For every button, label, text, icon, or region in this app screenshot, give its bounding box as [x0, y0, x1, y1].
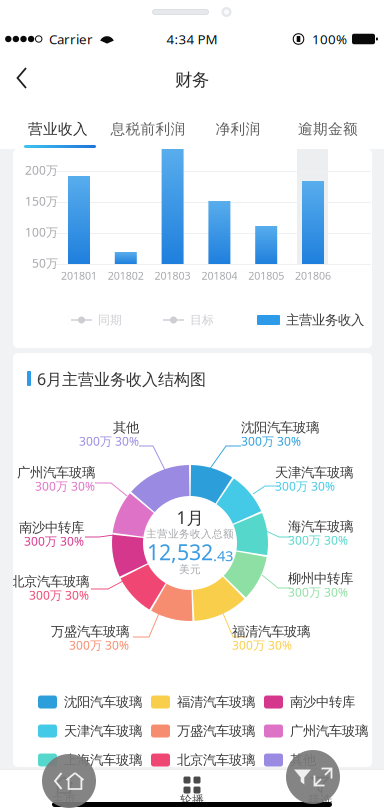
- button[interactable]: 息税前利润: [103, 102, 193, 149]
- button[interactable]: 轮播: [128, 776, 256, 806]
- staticText: 上海汽车玻璃: [64, 752, 142, 768]
- staticText: Carrier: [49, 30, 93, 48]
- staticText: 300万 30%: [69, 637, 129, 653]
- staticText: 南沙中转库: [290, 694, 355, 710]
- staticText: 300万 30%: [232, 637, 292, 653]
- staticText: 轮播: [180, 792, 204, 807]
- staticText: 300万 30%: [241, 433, 301, 449]
- staticText: 天津汽车玻璃: [64, 723, 142, 739]
- staticText: 营业收入: [28, 120, 88, 138]
- staticText: 201802: [108, 268, 144, 283]
- staticText: 201805: [248, 268, 284, 283]
- staticText: 福清汽车玻璃: [232, 623, 310, 640]
- staticText: 300万 30%: [29, 587, 89, 603]
- staticText: 目标: [190, 312, 214, 327]
- staticText: 300万 30%: [35, 478, 95, 494]
- staticText: 北京汽车玻璃: [11, 573, 89, 590]
- staticText: 200万: [25, 162, 58, 178]
- button[interactable]: Back: [0, 56, 44, 100]
- staticText: 南沙中转库: [19, 519, 84, 536]
- staticText: 其他: [290, 752, 316, 768]
- staticText: 天津汽车玻璃: [275, 464, 353, 481]
- staticText: 福清汽车玻璃: [177, 694, 255, 710]
- staticText: 主营业务收入总额: [146, 527, 234, 541]
- staticText: 300万 30%: [288, 532, 348, 548]
- staticText: 净利润: [215, 120, 260, 138]
- staticText: 201806: [295, 268, 331, 283]
- staticText: 沈阳汽车玻璃: [241, 419, 319, 436]
- staticText: 100万: [25, 224, 58, 240]
- staticText: 财务: [175, 69, 209, 91]
- button[interactable]: 逾期金额: [283, 102, 373, 149]
- staticText: 广州汽车玻璃: [290, 723, 368, 739]
- staticText: 100%: [312, 30, 347, 48]
- staticText: 万盛汽车玻璃: [177, 723, 255, 739]
- staticText: 201804: [201, 268, 237, 283]
- staticText: .43: [213, 546, 233, 566]
- staticText: 其他: [113, 419, 139, 436]
- button[interactable]: 筛选: [256, 776, 384, 806]
- staticText: 美元: [179, 563, 201, 576]
- staticText: 150万: [25, 193, 58, 209]
- staticText: 北京汽车玻璃: [177, 752, 255, 768]
- button[interactable]: 主页: [0, 776, 128, 806]
- staticText: 万盛汽车玻璃: [51, 623, 129, 640]
- staticText: 海汽车玻璃: [288, 518, 353, 535]
- staticText: 50万: [32, 255, 58, 271]
- staticText: 柳州中转库: [288, 570, 353, 587]
- staticText: 息税前利润: [110, 120, 185, 138]
- staticText: 12,532: [147, 537, 213, 567]
- staticText: 300万 30%: [275, 478, 335, 494]
- staticText: 逾期金额: [298, 120, 358, 138]
- staticText: 300万 30%: [288, 584, 348, 600]
- staticText: 4:34 PM: [166, 30, 217, 48]
- staticText: 主营业务收入: [286, 312, 364, 328]
- staticText: 主页: [52, 792, 76, 807]
- staticText: 广州汽车玻璃: [17, 464, 95, 481]
- staticText: 1月: [176, 506, 203, 529]
- staticText: 6月主营业务收入结构图: [37, 368, 206, 390]
- staticText: 201803: [155, 268, 191, 283]
- staticText: 同期: [98, 312, 122, 327]
- staticText: 沈阳汽车玻璃: [64, 694, 142, 710]
- staticText: 筛选: [308, 792, 332, 807]
- button[interactable]: 净利润: [193, 102, 283, 149]
- button[interactable]: 营业收入: [13, 102, 103, 149]
- staticText: 300万 30%: [79, 433, 139, 449]
- staticText: 300万 30%: [24, 533, 84, 549]
- staticText: 201801: [61, 268, 97, 283]
